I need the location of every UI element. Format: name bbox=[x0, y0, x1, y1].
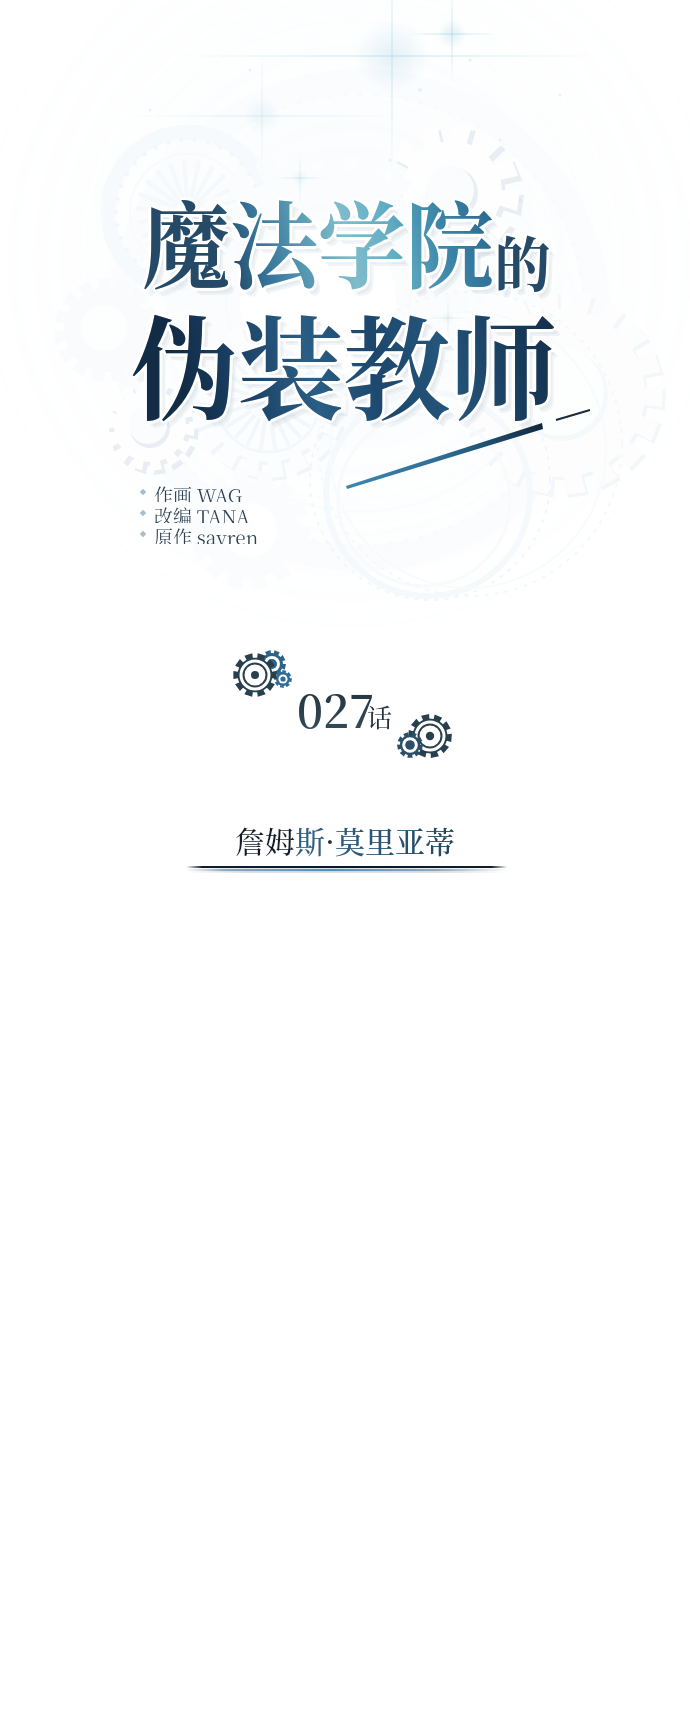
staticText: 魔法学院 bbox=[142, 170, 494, 305]
staticText: 伪装教师 bbox=[129, 280, 555, 441]
button[interactable]: 魔法学院的伪装教师 bbox=[120, 185, 565, 435]
staticText: 魔法学院 bbox=[142, 173, 494, 308]
staticText: 魔法学院 bbox=[139, 173, 491, 308]
staticText: 伪装教师 bbox=[131, 285, 557, 446]
staticText: 伪装教师 bbox=[128, 282, 554, 443]
staticText: 伪装教师 bbox=[131, 279, 557, 440]
staticText: 伪装教师 bbox=[134, 282, 560, 443]
staticText: 话 bbox=[367, 698, 393, 734]
staticText: 魔法学院 bbox=[142, 176, 494, 311]
staticText: 的 bbox=[494, 221, 551, 307]
staticText: 的 bbox=[492, 220, 549, 306]
other: Decorative gears bbox=[0, 0, 690, 1717]
staticText: 魔法学院 bbox=[148, 180, 500, 315]
staticText: 的 bbox=[498, 223, 555, 309]
button[interactable]: 027 bbox=[297, 676, 401, 741]
staticText: 的 bbox=[491, 218, 548, 304]
staticText: 的 bbox=[496, 220, 553, 306]
button[interactable]: 詹姆 bbox=[235, 818, 455, 861]
staticText: 伪装教师 bbox=[129, 284, 555, 445]
staticText: 魔法学院 bbox=[140, 175, 492, 310]
staticText: 伪装教师 bbox=[135, 287, 561, 448]
staticText: 的 bbox=[494, 215, 551, 301]
button[interactable]: 作画 WAG bbox=[137, 481, 259, 544]
staticText: 伪装教师 bbox=[137, 289, 563, 450]
staticText: 027 bbox=[297, 676, 375, 741]
staticText: 魔法学院 bbox=[144, 175, 496, 310]
staticText: · bbox=[325, 818, 335, 861]
staticText: 改编 TANA bbox=[154, 502, 250, 523]
staticText: 原作 sayren bbox=[154, 523, 259, 544]
staticText: 作画 WAG bbox=[154, 481, 242, 502]
staticText: 詹姆 bbox=[235, 818, 295, 861]
staticText: 莫里亚蒂 bbox=[335, 818, 455, 861]
staticText: 伪装教师 bbox=[131, 282, 557, 443]
staticText: 魔法学院 bbox=[145, 173, 497, 308]
staticText: 的 bbox=[492, 216, 549, 302]
staticText: 的 bbox=[494, 218, 551, 304]
staticText: 的 bbox=[497, 218, 554, 304]
staticText: 魔法学院 bbox=[146, 178, 498, 313]
staticText: 斯 bbox=[295, 818, 325, 861]
staticText: 伪装教师 bbox=[133, 284, 559, 445]
staticText: 魔法学院 bbox=[140, 171, 492, 306]
staticText: 伪装教师 bbox=[133, 280, 559, 441]
staticText: 魔法学院 bbox=[144, 171, 496, 306]
staticText: 的 bbox=[500, 225, 557, 311]
staticText: 的 bbox=[496, 216, 553, 302]
